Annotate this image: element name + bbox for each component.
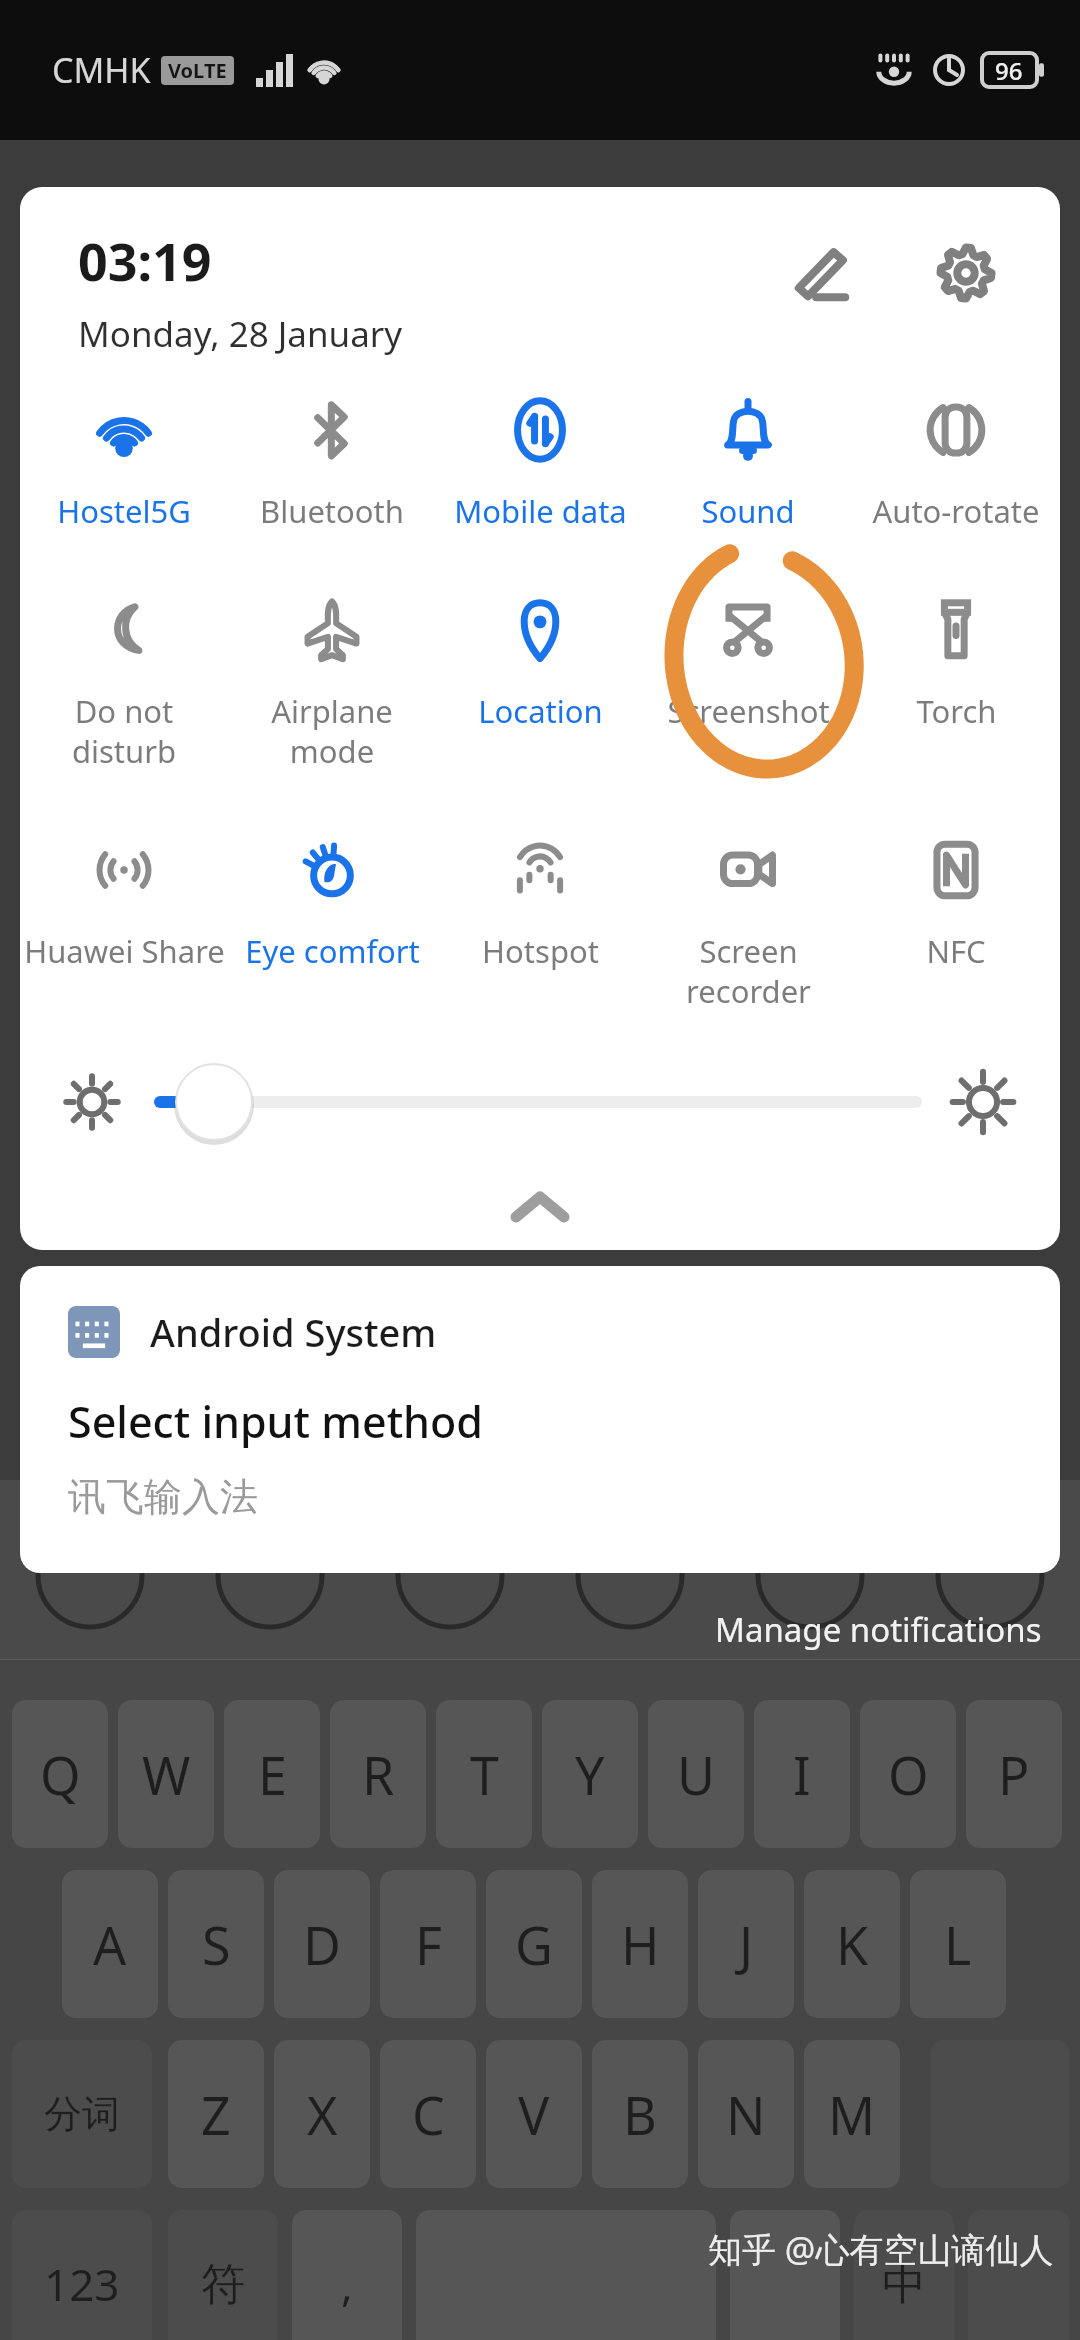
button[interactable]: Manage notifications — [691, 1599, 1066, 1660]
staticText: J — [739, 1909, 754, 1980]
staticText: Manage notifications — [715, 1607, 1042, 1652]
staticText: P — [998, 1739, 1030, 1810]
staticText: H — [621, 1909, 660, 1980]
button[interactable]: Brightness — [154, 1057, 916, 1147]
staticText: L — [944, 1909, 972, 1980]
staticText: 讯飞输入法 — [68, 1473, 258, 1521]
staticText: R — [362, 1739, 395, 1810]
button[interactable]: Airplane mode — [228, 592, 436, 776]
staticText: Screen recorder — [686, 930, 811, 1012]
staticText: 中 — [882, 2257, 926, 2312]
staticText: 分词 — [44, 2090, 120, 2138]
staticText: 符 — [201, 2257, 245, 2312]
button[interactable]: Bluetooth — [228, 392, 436, 536]
staticText: Q — [40, 1739, 81, 1810]
staticText: CMHK — [52, 47, 151, 93]
staticText: Sound — [701, 490, 795, 532]
staticText: Airplane mode — [228, 690, 436, 772]
button[interactable]: Eye comfort — [228, 832, 436, 976]
button[interactable]: Mobile data — [436, 392, 644, 536]
staticText: O — [888, 1739, 929, 1810]
staticText: Location — [478, 690, 603, 732]
button[interactable]: Location — [436, 592, 644, 736]
staticText: I — [793, 1739, 811, 1810]
staticText: Android System — [150, 1306, 437, 1358]
staticText: D — [303, 1909, 341, 1980]
staticText: 123 — [44, 2254, 120, 2314]
staticText: Bluetooth — [260, 490, 404, 532]
staticText: VoLTE — [168, 57, 227, 84]
button[interactable]: Torch — [852, 592, 1060, 736]
staticText: , — [341, 2254, 353, 2314]
staticText: U — [677, 1739, 716, 1810]
staticText: Eye comfort — [245, 930, 420, 972]
staticText: A — [93, 1909, 127, 1980]
staticText: Hostel5G — [57, 490, 191, 532]
staticText: T — [470, 1739, 499, 1810]
button[interactable]: Hotspot — [436, 832, 644, 976]
staticText: Do not disturb — [20, 690, 228, 772]
staticText: Auto-rotate — [872, 490, 1040, 532]
button[interactable]: Auto-rotate — [852, 392, 1060, 536]
staticText: G — [515, 1909, 553, 1980]
button[interactable]: Screen recorder — [644, 832, 852, 1016]
staticText: V — [518, 2079, 550, 2150]
button[interactable]: Hostel5G — [20, 392, 228, 536]
staticText: Z — [201, 2079, 231, 2150]
staticText: Huawei Share — [24, 930, 225, 972]
staticText: K — [836, 1909, 869, 1980]
button[interactable]: Edit — [774, 225, 870, 321]
button[interactable]: Android System — [20, 1266, 1060, 1573]
button[interactable]: Do not disturb — [20, 592, 228, 776]
button[interactable]: Screenshot — [644, 592, 852, 736]
staticText: W — [142, 1739, 191, 1810]
staticText: F — [415, 1909, 442, 1980]
staticText: Select input method — [68, 1392, 483, 1451]
staticText: Hotspot — [482, 930, 599, 972]
staticText: S — [202, 1909, 231, 1980]
staticText: Y — [575, 1739, 605, 1810]
button[interactable]: NFC — [852, 832, 1060, 976]
staticText: E — [258, 1739, 287, 1810]
button[interactable]: Huawei Share — [20, 832, 228, 976]
button[interactable]: Sound — [644, 392, 852, 536]
staticText: B — [623, 2079, 657, 2150]
staticText: X — [307, 2079, 338, 2150]
staticText: Mobile data — [454, 490, 627, 532]
staticText: 知乎 @心有空山谪仙人 — [708, 2226, 1054, 2272]
staticText: 03:19 — [78, 225, 212, 296]
staticText: Monday, 28 January — [78, 310, 403, 358]
staticText: Torch — [916, 690, 997, 732]
staticText: N — [726, 2079, 766, 2150]
staticText: 96 — [995, 54, 1023, 87]
staticText: NFC — [926, 930, 986, 972]
staticText: M — [828, 2079, 876, 2150]
button[interactable]: Collapse — [20, 1170, 1060, 1242]
button[interactable]: Settings — [918, 225, 1014, 321]
staticText: Screenshot — [667, 690, 830, 732]
staticText: C — [412, 2079, 445, 2150]
